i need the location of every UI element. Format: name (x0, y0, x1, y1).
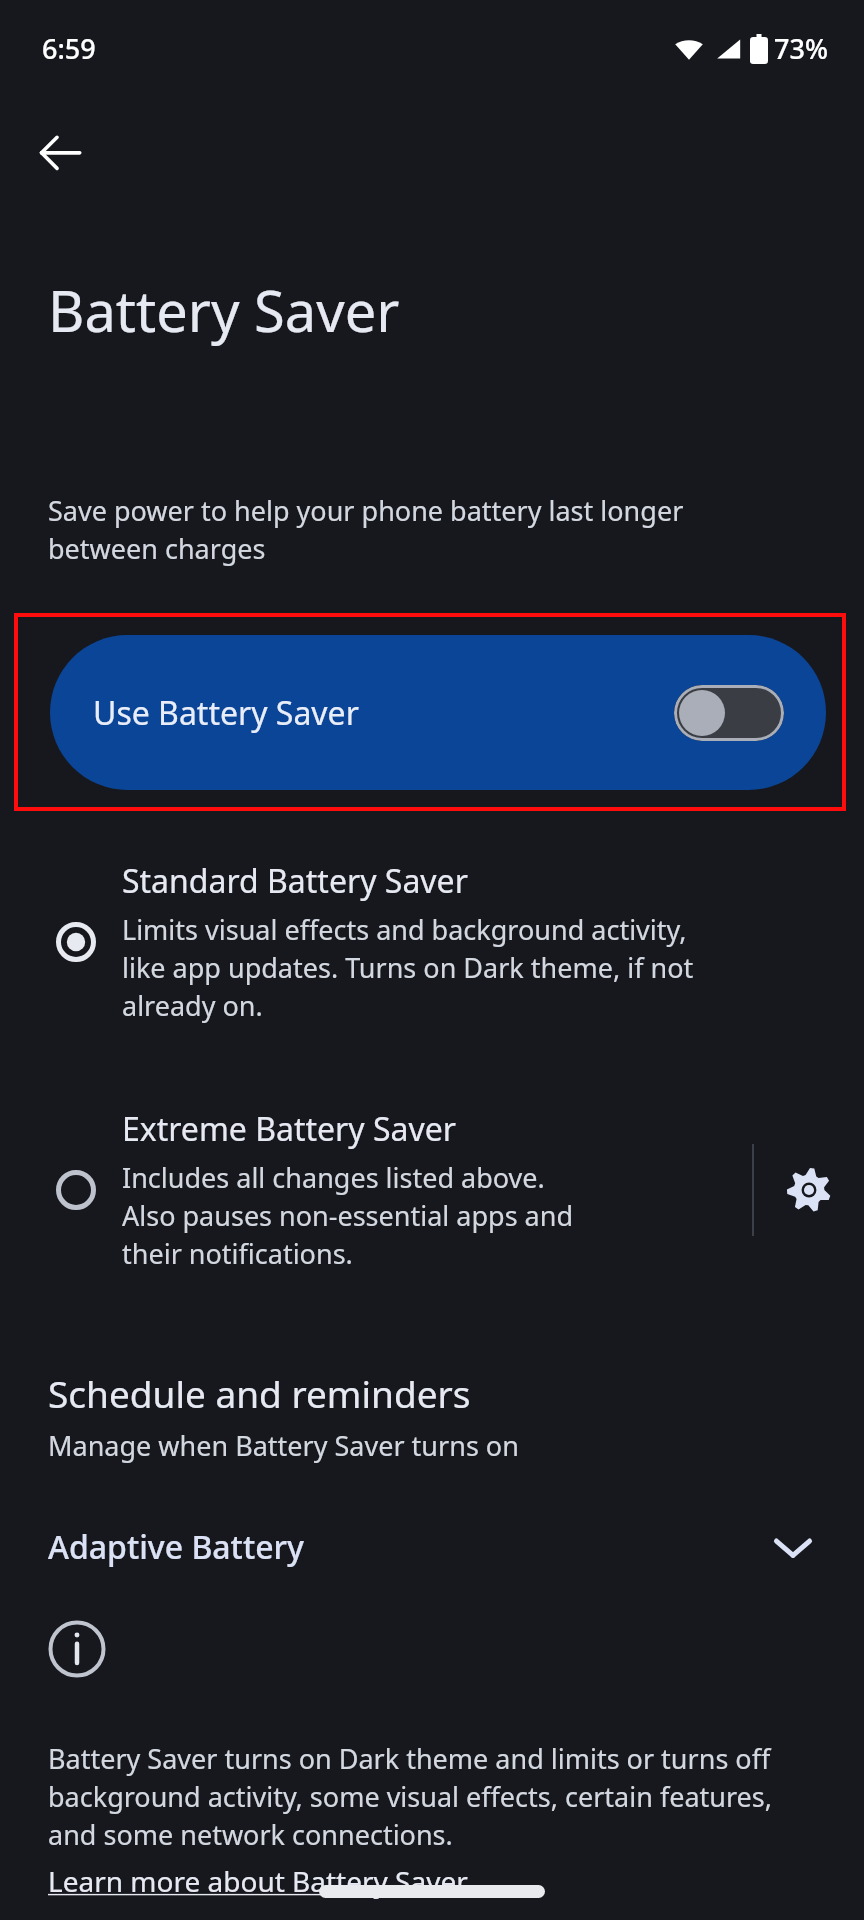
staticText: Battery Saver turns on Dark theme and li… (48, 1740, 848, 1853)
staticText: Learn more about Battery Saver (48, 1862, 468, 1900)
staticText: Includes all changes listed above. Also … (122, 1159, 574, 1272)
staticText: Schedule and reminders (48, 1368, 471, 1418)
button[interactable]: Extreme Battery Saver settings (754, 1135, 864, 1245)
button[interactable]: Back (24, 116, 96, 188)
button[interactable]: Extreme Battery Saver (0, 1093, 752, 1286)
staticText: Use Battery Saver (93, 691, 674, 735)
staticText: Adaptive Battery (48, 1525, 770, 1569)
staticText: Limits visual effects and background act… (122, 911, 694, 1024)
staticText: Save power to help your phone battery la… (48, 492, 738, 567)
button[interactable]: Use Battery Saver (50, 635, 826, 790)
staticText: Battery Saver (48, 272, 400, 348)
button[interactable]: Standard Battery Saver (0, 845, 864, 1038)
staticText: Extreme Battery Saver (122, 1107, 456, 1151)
staticText: Standard Battery Saver (122, 859, 468, 903)
staticText: 6:59 (42, 30, 96, 67)
staticText: 73% (774, 30, 828, 67)
button[interactable]: Adaptive Battery (0, 1510, 864, 1584)
staticText: Manage when Battery Saver turns on (48, 1427, 519, 1464)
button[interactable]: Learn more about Battery Saver (48, 1862, 468, 1900)
